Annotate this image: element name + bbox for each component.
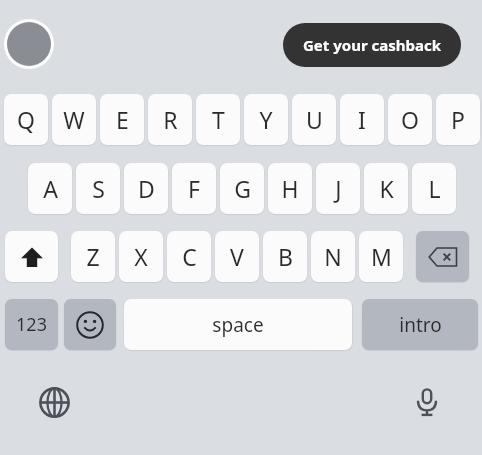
button[interactable]: D	[124, 163, 168, 214]
button[interactable]: Change language	[32, 380, 76, 424]
button[interactable]: L	[412, 163, 456, 214]
button[interactable]: U	[292, 94, 336, 145]
staticText: E	[116, 104, 129, 135]
staticText: C	[182, 241, 197, 272]
staticText: N	[324, 241, 342, 272]
staticText: J	[335, 173, 342, 204]
staticText: A	[43, 173, 58, 204]
staticText: L	[428, 173, 441, 204]
button[interactable]: B	[263, 231, 307, 282]
button[interactable]: S	[76, 163, 120, 214]
staticText: U	[306, 104, 323, 135]
button[interactable]: Emoji	[64, 299, 116, 350]
staticText: F	[188, 173, 200, 204]
button[interactable]: F	[172, 163, 216, 214]
staticText: 123	[16, 312, 47, 337]
button[interactable]: Q	[4, 94, 48, 145]
button[interactable]: H	[268, 163, 312, 214]
button[interactable]: N	[311, 231, 355, 282]
staticText: P	[451, 104, 465, 135]
staticText: Z	[86, 241, 100, 272]
button[interactable]: A	[28, 163, 72, 214]
staticText: X	[134, 241, 148, 272]
button[interactable]: Profile	[4, 19, 54, 69]
button[interactable]: Voice input	[405, 380, 449, 424]
button[interactable]: Backspace	[416, 231, 469, 282]
staticText: intro	[399, 312, 442, 338]
staticText: D	[138, 173, 155, 204]
button[interactable]: K	[364, 163, 408, 214]
button[interactable]: 123	[5, 299, 58, 350]
staticText: Q	[17, 104, 35, 135]
staticText: K	[379, 173, 394, 204]
staticText: S	[92, 173, 105, 204]
button[interactable]: I	[340, 94, 384, 145]
button[interactable]: P	[436, 94, 480, 145]
staticText: T	[212, 104, 225, 135]
staticText: W	[63, 104, 85, 135]
button[interactable]: Get your cashback	[283, 23, 461, 67]
button[interactable]: space	[124, 299, 352, 350]
button[interactable]: Y	[244, 94, 288, 145]
button[interactable]: O	[388, 94, 432, 145]
staticText: H	[281, 173, 299, 204]
staticText: Get your cashback	[303, 35, 442, 55]
button[interactable]: V	[215, 231, 259, 282]
staticText: R	[163, 104, 178, 135]
staticText: O	[401, 104, 419, 135]
button[interactable]: intro	[362, 299, 478, 350]
button[interactable]: G	[220, 163, 264, 214]
button[interactable]: T	[196, 94, 240, 145]
staticText: V	[230, 241, 244, 272]
button[interactable]: M	[359, 231, 403, 282]
button[interactable]: W	[52, 94, 96, 145]
button[interactable]: R	[148, 94, 192, 145]
staticText: M	[371, 241, 392, 272]
button[interactable]: C	[167, 231, 211, 282]
button[interactable]: E	[100, 94, 144, 145]
staticText: I	[358, 104, 366, 135]
staticText: Y	[259, 104, 273, 135]
button[interactable]: J	[316, 163, 360, 214]
button[interactable]: Z	[71, 231, 115, 282]
button[interactable]: X	[119, 231, 163, 282]
staticText: G	[234, 173, 251, 204]
staticText: space	[212, 312, 264, 338]
staticText: B	[278, 241, 293, 272]
button[interactable]: Shift	[5, 231, 58, 282]
